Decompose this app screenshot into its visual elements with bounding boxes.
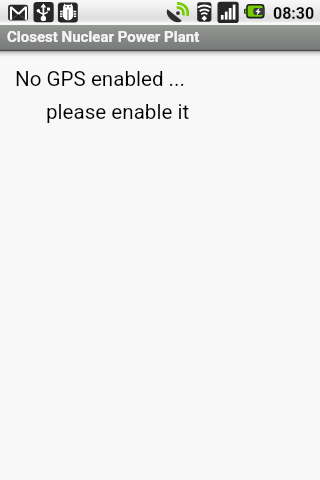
button[interactable]: Closest Nuclear Power Plant [0, 25, 320, 51]
button[interactable]: please enable it [46, 100, 190, 124]
button[interactable]: No GPS enabled ... [15, 67, 185, 91]
staticText: 08:30 [273, 4, 315, 23]
staticText: Closest Nuclear Power Plant [7, 28, 200, 46]
